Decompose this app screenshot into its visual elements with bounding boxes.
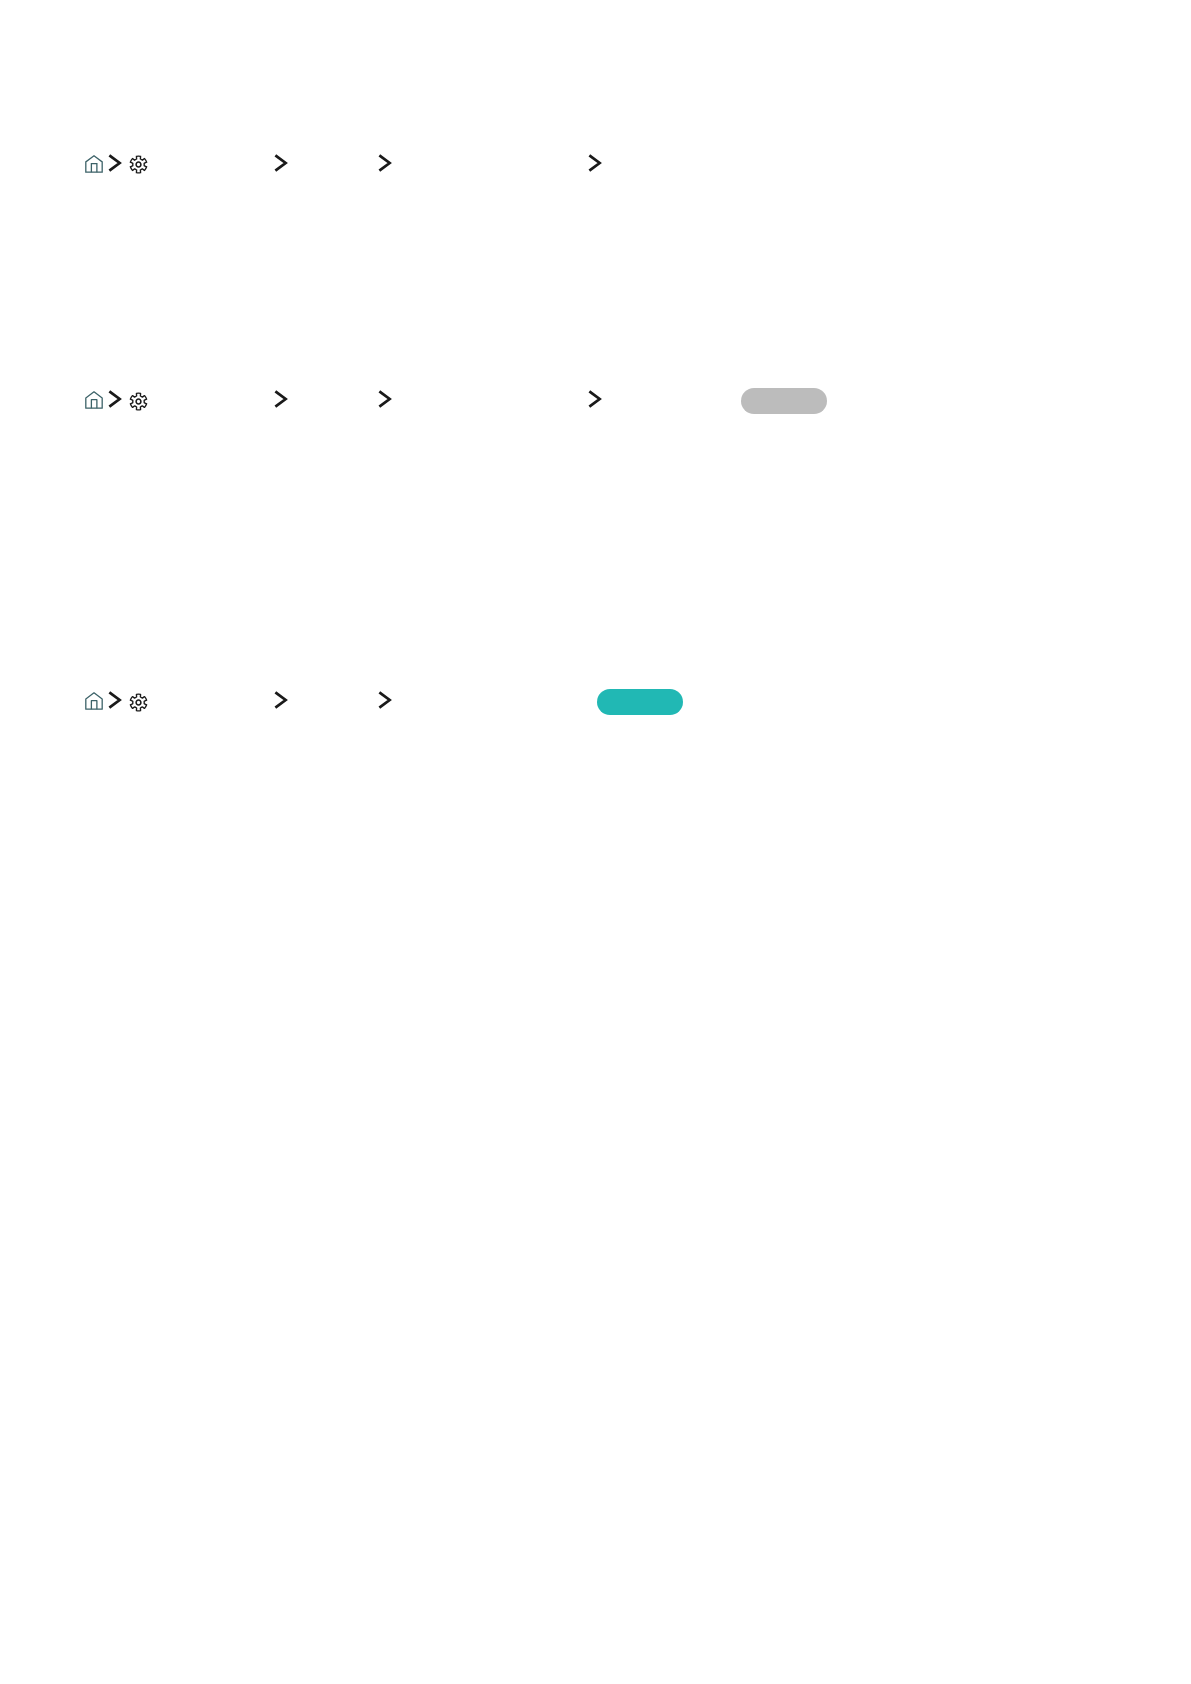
other: Then — [588, 390, 601, 408]
other: Settings — [129, 155, 148, 174]
other: Settings — [129, 693, 148, 712]
button[interactable]: Selected option — [597, 689, 683, 715]
other: Home — [85, 692, 103, 710]
button[interactable]: Home — [85, 155, 103, 173]
other: Then — [274, 390, 287, 408]
other: Home — [85, 391, 103, 409]
other: Settings — [129, 392, 148, 411]
other: Then — [588, 154, 601, 172]
other: Then — [378, 691, 391, 709]
other: Then — [108, 154, 121, 172]
other: Then — [274, 691, 287, 709]
button[interactable]: Settings — [129, 155, 148, 174]
button[interactable]: Home — [85, 391, 103, 409]
button[interactable]: Settings — [129, 693, 148, 712]
other: Then — [108, 691, 121, 709]
other: Then — [378, 390, 391, 408]
button[interactable]: Unavailable option — [741, 388, 827, 414]
other: Then — [378, 154, 391, 172]
other: Then — [108, 390, 121, 408]
button[interactable]: Home — [85, 692, 103, 710]
button[interactable]: Settings — [129, 392, 148, 411]
other: Home — [85, 155, 103, 173]
other: Then — [274, 154, 287, 172]
